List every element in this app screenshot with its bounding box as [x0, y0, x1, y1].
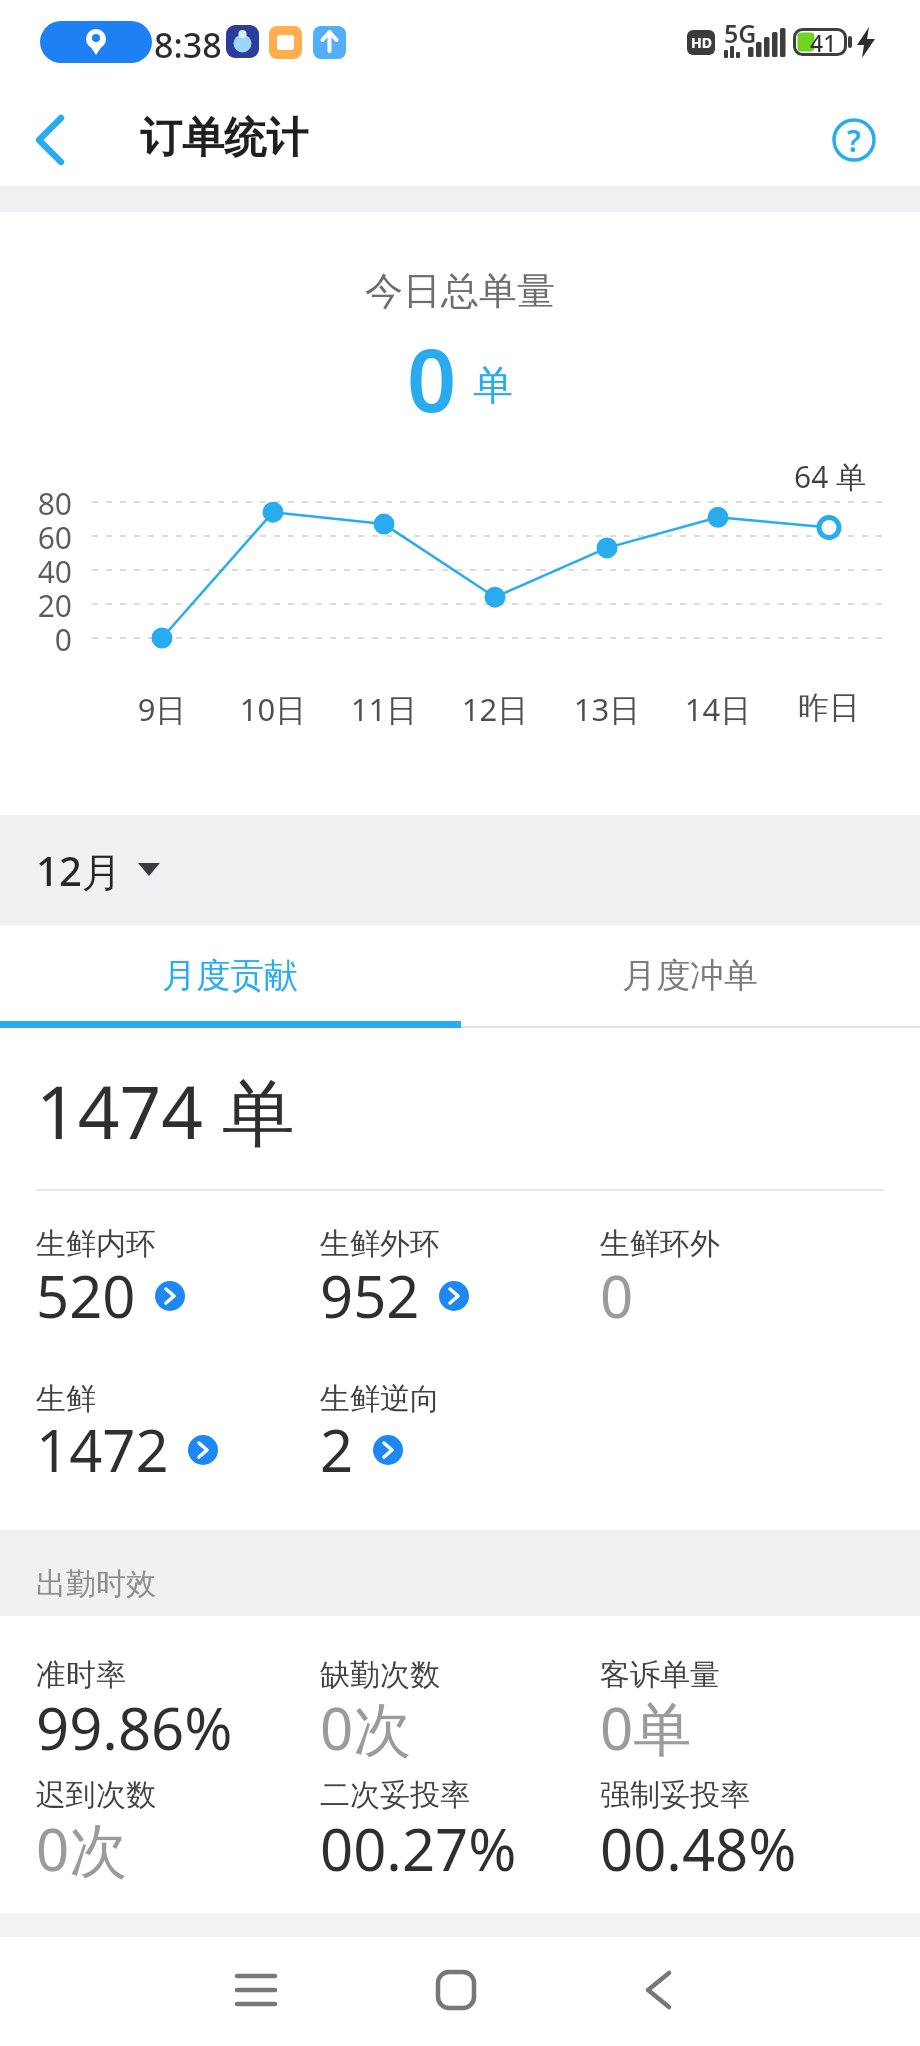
staticText: 00.48%: [600, 1809, 797, 1888]
staticText: 8:38: [154, 22, 222, 68]
staticText: 0: [407, 320, 457, 430]
staticText: 生鲜: [36, 1380, 96, 1418]
staticText: 13日: [552, 688, 662, 730]
staticText: HD: [691, 33, 712, 52]
button[interactable]: [14, 104, 86, 176]
button[interactable]: 520: [36, 1256, 185, 1335]
staticText: 0: [600, 1256, 634, 1335]
staticText: 今日总单量: [365, 267, 555, 315]
staticText: 12月: [36, 843, 122, 898]
staticText: 缺勤次数: [320, 1656, 440, 1694]
button: 00.48%: [600, 1809, 797, 1888]
staticText: 952: [320, 1256, 420, 1335]
staticText: 14日: [663, 688, 773, 730]
button: 0: [600, 1256, 634, 1335]
staticText: 客诉单量: [600, 1656, 720, 1694]
staticText: 1472: [36, 1410, 169, 1489]
staticText: 1474 单: [36, 1061, 296, 1161]
staticText: 99.86%: [36, 1688, 233, 1767]
button[interactable]: ?: [820, 106, 888, 174]
staticText: 迟到次数: [36, 1776, 156, 1814]
button: 99.86%: [36, 1688, 233, 1767]
staticText: 2: [320, 1410, 354, 1489]
staticText: 0单: [600, 1688, 692, 1767]
button: 0次: [320, 1688, 412, 1767]
staticText: 月度冲单: [622, 954, 758, 997]
button[interactable]: [216, 1950, 296, 2030]
button[interactable]: [618, 1950, 698, 2030]
staticText: 订单统计: [140, 112, 308, 165]
staticText: 月度贡献: [162, 954, 298, 997]
staticText: ?: [847, 120, 861, 161]
staticText: 0: [0, 619, 72, 660]
staticText: 出勤时效: [36, 1565, 156, 1603]
staticText: 0次: [320, 1688, 412, 1767]
staticText: 520: [36, 1256, 136, 1335]
staticText: 生鲜内环: [36, 1225, 156, 1263]
staticText: 80: [0, 483, 72, 524]
staticText: 0次: [36, 1809, 128, 1888]
staticText: 准时率: [36, 1656, 126, 1694]
staticText: 20: [0, 585, 72, 626]
button[interactable]: 1472: [36, 1410, 218, 1489]
staticText: 40: [0, 551, 72, 592]
staticText: 00.27%: [320, 1809, 517, 1888]
button[interactable]: 月度贡献: [0, 925, 460, 1025]
button[interactable]: 月度冲单: [460, 925, 920, 1025]
button: 00.27%: [320, 1809, 517, 1888]
staticText: 生鲜逆向: [320, 1380, 440, 1418]
staticText: 强制妥投率: [600, 1776, 750, 1814]
button[interactable]: 952: [320, 1256, 469, 1335]
button: 0次: [36, 1809, 128, 1888]
staticText: 41: [810, 27, 837, 58]
staticText: 5G: [724, 16, 757, 50]
button[interactable]: 12月: [0, 815, 920, 925]
staticText: 单: [473, 360, 513, 410]
button[interactable]: 2: [320, 1410, 403, 1489]
staticText: 昨日: [774, 688, 884, 727]
staticText: 10日: [218, 688, 328, 730]
staticText: 生鲜外环: [320, 1225, 440, 1263]
staticText: 64 单: [794, 456, 867, 497]
staticText: 11日: [329, 688, 439, 730]
button: 0单: [600, 1688, 692, 1767]
staticText: 生鲜环外: [600, 1225, 720, 1263]
staticText: 二次妥投率: [320, 1776, 470, 1814]
staticText: 12日: [440, 688, 550, 730]
staticText: 9日: [107, 688, 217, 730]
button[interactable]: [416, 1950, 496, 2030]
staticText: 60: [0, 517, 72, 558]
